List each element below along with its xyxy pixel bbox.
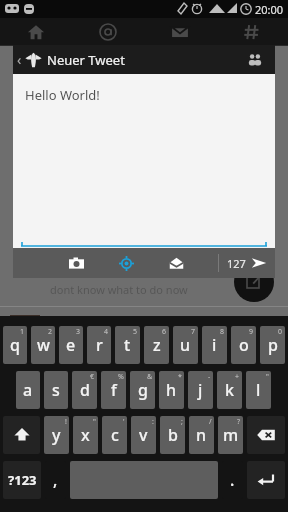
button[interactable]: f — [101, 371, 126, 409]
staticText: k — [225, 379, 234, 401]
staticText: 9 — [249, 327, 254, 337]
staticText: m — [223, 424, 239, 446]
button[interactable]: g — [130, 371, 155, 409]
staticText: 5 — [133, 327, 138, 337]
staticText: Neuer Tweet — [47, 51, 125, 69]
button[interactable]: Location — [113, 250, 139, 276]
staticText: 3 — [76, 327, 81, 337]
staticText: % — [118, 372, 124, 382]
staticText: t — [124, 334, 131, 356]
button[interactable]: Camera — [63, 250, 89, 276]
button[interactable]: b — [160, 416, 185, 454]
staticText: 127 — [227, 256, 246, 271]
staticText: , — [53, 469, 58, 491]
staticText: b — [168, 424, 178, 446]
staticText: h — [166, 379, 177, 401]
button[interactable]: u — [173, 326, 198, 364]
button[interactable]: Direct message — [163, 250, 189, 276]
staticText: " — [266, 372, 269, 382]
button[interactable]: Messages — [144, 18, 216, 45]
button[interactable]: Shift — [3, 416, 40, 454]
button[interactable]: Mentions — [72, 18, 144, 45]
staticText: 1 — [20, 327, 25, 337]
staticText: z — [153, 334, 161, 356]
button[interactable]: i — [202, 326, 227, 364]
staticText: 0 — [278, 327, 283, 337]
button[interactable]: d — [72, 371, 97, 409]
staticText: i — [212, 334, 217, 356]
button[interactable]: Backspace — [247, 416, 285, 454]
button[interactable]: Recipients — [235, 45, 275, 74]
staticText: s — [52, 379, 60, 401]
button[interactable]: y — [44, 416, 69, 454]
staticText: 6 — [162, 327, 167, 337]
staticText: Hello World! — [25, 86, 100, 104]
button[interactable]: Enter — [247, 461, 285, 499]
staticText: / — [209, 417, 212, 427]
button[interactable]: a — [16, 371, 40, 409]
staticText: f — [111, 379, 117, 401]
button[interactable]: w — [31, 326, 55, 364]
button[interactable]: Home — [0, 18, 72, 45]
staticText: a — [23, 379, 33, 401]
button[interactable]: z — [144, 326, 169, 364]
button[interactable]: ?123 — [3, 461, 41, 499]
button[interactable]: Search — [216, 18, 288, 45]
button[interactable]: ‹ — [13, 45, 235, 74]
staticText: 4 — [104, 327, 109, 337]
staticText: " — [93, 417, 96, 427]
staticText: ! — [65, 417, 67, 427]
staticText: p — [268, 334, 278, 356]
button[interactable]: , — [45, 461, 66, 499]
staticText: c — [111, 424, 119, 446]
staticText: l — [256, 379, 261, 401]
button[interactable]: t — [115, 326, 140, 364]
staticText: + — [235, 372, 240, 382]
button[interactable]: . — [222, 461, 243, 499]
staticText: q — [10, 334, 20, 356]
staticText: j — [198, 379, 203, 401]
button[interactable]: 127 — [219, 255, 275, 271]
button[interactable]: Compose — [234, 262, 274, 302]
staticText: 20:00 — [255, 2, 284, 17]
button[interactable]: p — [260, 326, 285, 364]
staticText: 2 — [48, 327, 53, 337]
staticText: r — [96, 334, 103, 356]
staticText: 7 — [191, 327, 196, 337]
staticText: ; — [181, 417, 183, 427]
staticText: - — [208, 372, 211, 382]
button[interactable]: c — [102, 416, 127, 454]
button[interactable]: q — [3, 326, 27, 364]
staticText: dont know what to do now — [50, 282, 188, 297]
staticText: . — [230, 469, 235, 491]
button[interactable]: m — [218, 416, 243, 454]
button[interactable]: l — [246, 371, 271, 409]
staticText: ‹ — [17, 50, 22, 69]
staticText: n — [196, 424, 207, 446]
button[interactable]: s — [44, 371, 68, 409]
staticText: ? — [237, 417, 241, 427]
staticText: y — [52, 424, 61, 446]
staticText: & — [147, 372, 153, 382]
staticText: Marshmallow Cubör @mipop? — [48, 321, 204, 336]
staticText: d — [80, 379, 90, 401]
staticText: v — [139, 424, 148, 446]
staticText: : — [152, 417, 154, 427]
button[interactable]: k — [217, 371, 242, 409]
staticText: € — [90, 372, 95, 382]
button[interactable]: o — [231, 326, 256, 364]
button[interactable]: h — [159, 371, 184, 409]
button[interactable]: r — [87, 326, 111, 364]
staticText: 8 — [220, 327, 225, 337]
button[interactable]: x — [73, 416, 98, 454]
button[interactable]: v — [131, 416, 156, 454]
staticText: e — [66, 334, 76, 356]
button[interactable]: j — [188, 371, 213, 409]
staticText: ?123 — [8, 471, 37, 489]
staticText: u — [180, 334, 191, 356]
staticText: w — [37, 334, 50, 356]
button[interactable]: n — [189, 416, 214, 454]
staticText: x — [81, 424, 90, 446]
button[interactable]: e — [59, 326, 83, 364]
